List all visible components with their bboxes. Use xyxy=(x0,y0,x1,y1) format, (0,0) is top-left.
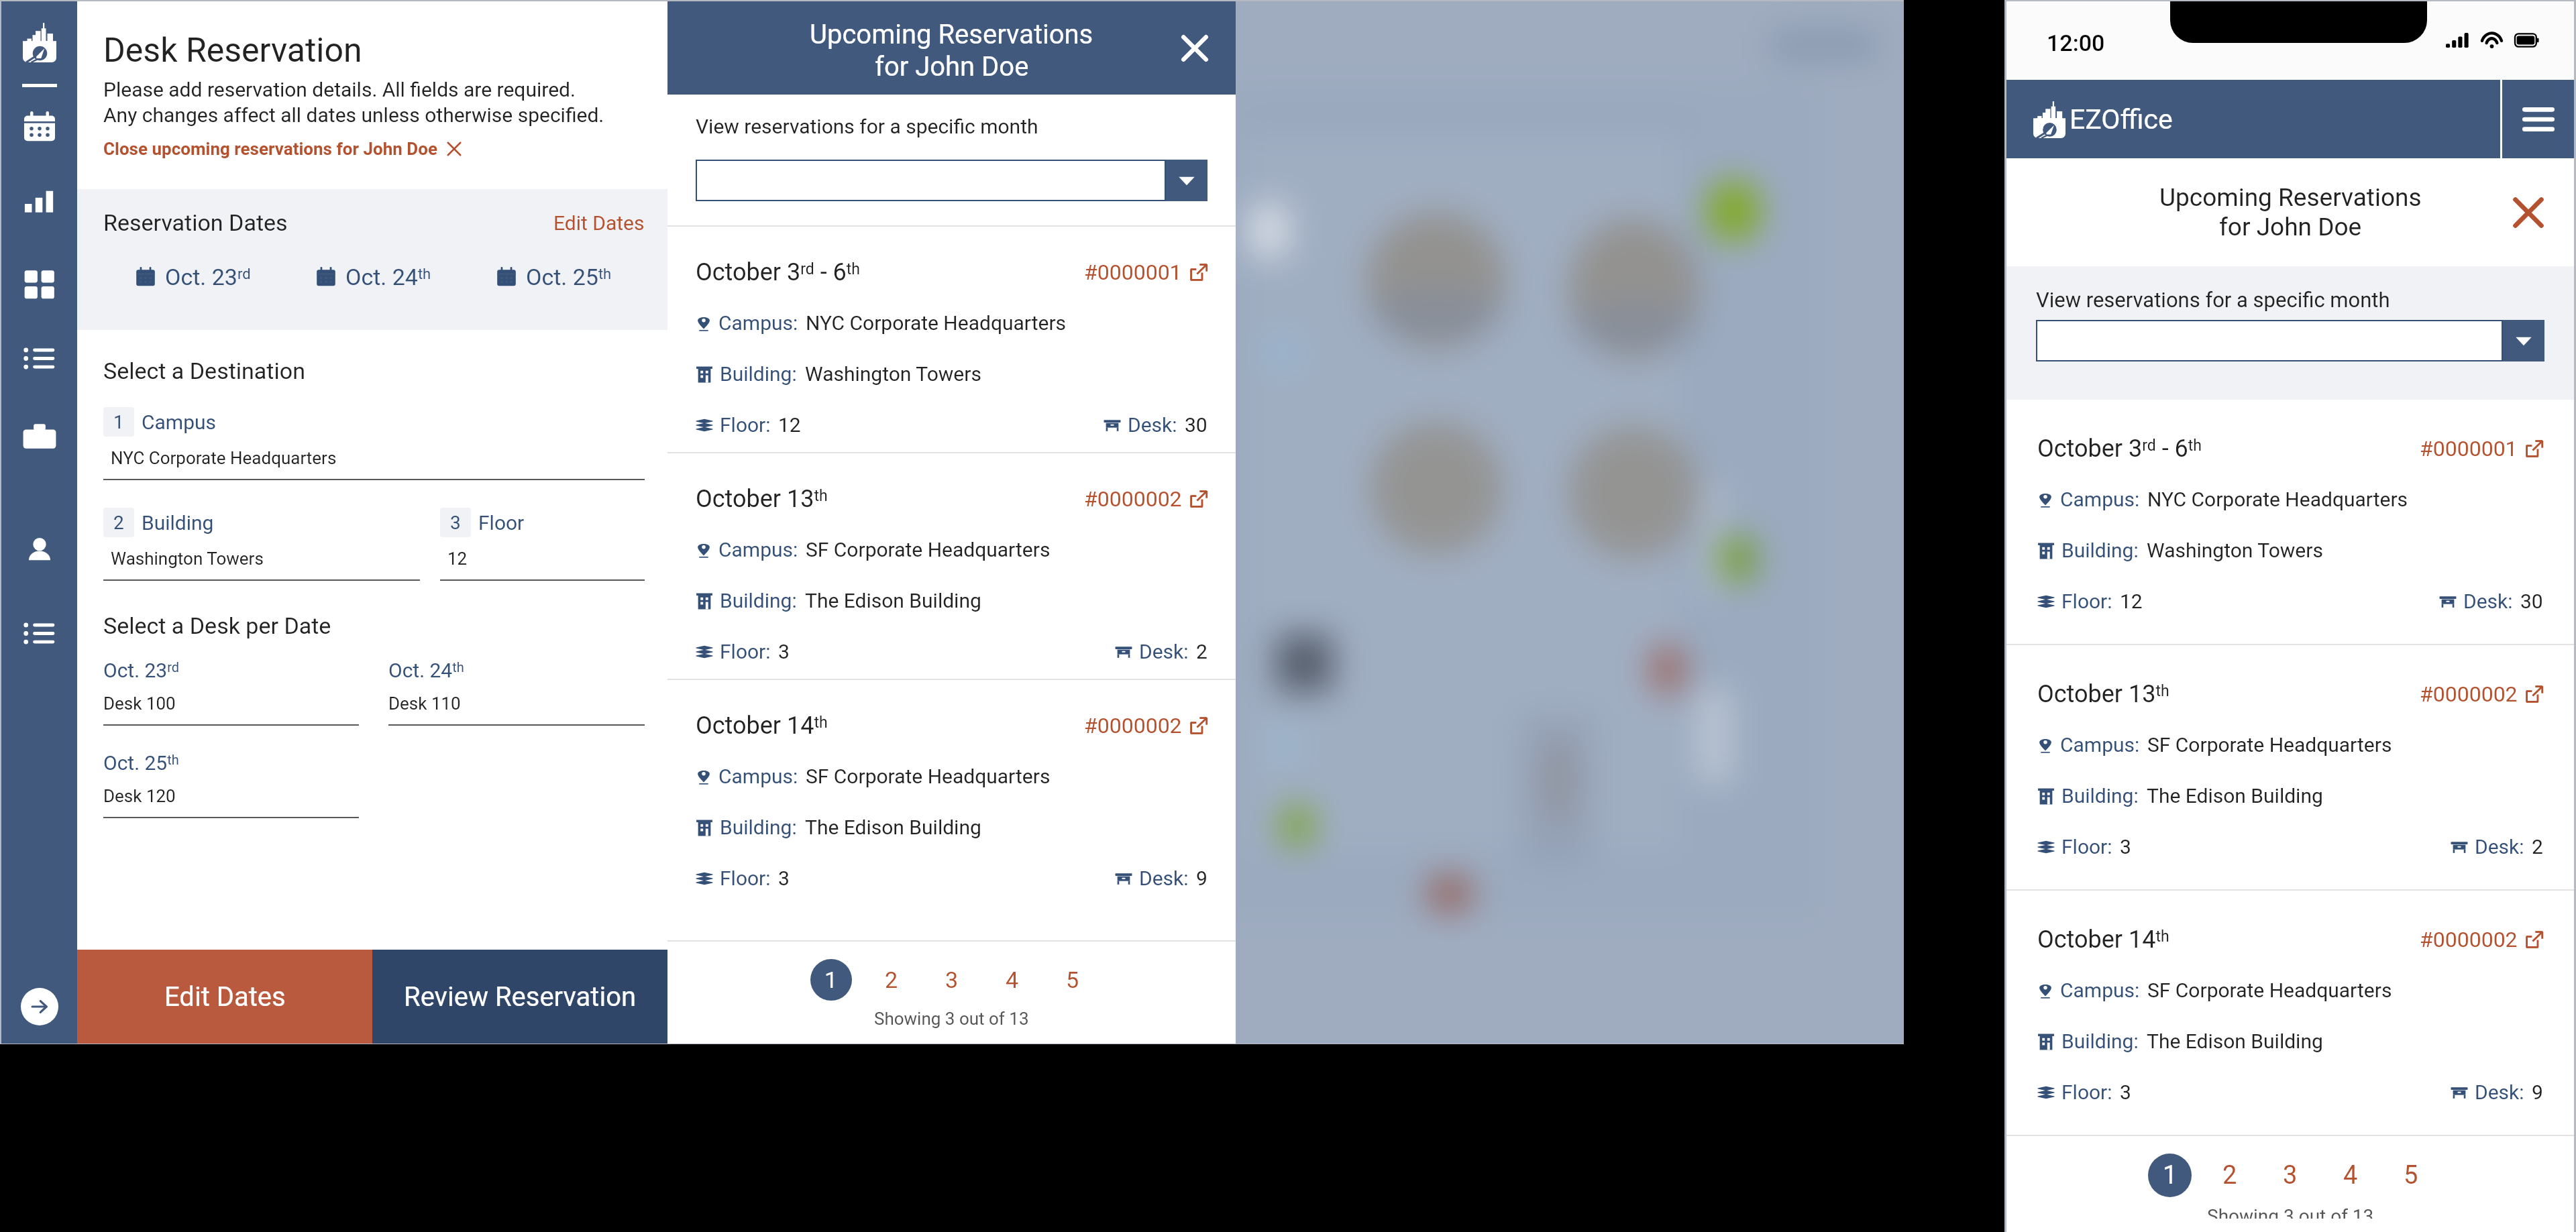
button[interactable]: Select month xyxy=(2036,320,2544,361)
staticText: Campus: xyxy=(718,311,803,335)
staticText: 4 xyxy=(1006,966,1019,993)
button[interactable]: 1 xyxy=(103,407,645,480)
button[interactable]: October 14th xyxy=(2006,891,2574,1135)
button[interactable]: Open reservation #0000002 xyxy=(1084,486,1207,512)
button[interactable]: October 14th xyxy=(667,680,1236,905)
staticText: 12:00 xyxy=(2047,30,2105,56)
button[interactable]: Dashboard xyxy=(17,262,62,307)
staticText: October 3rd - 6th xyxy=(2037,435,2202,463)
staticText: Campus: xyxy=(718,538,803,561)
button[interactable]: October 3rd - 6th xyxy=(667,227,1236,452)
button[interactable]: Open reservation #0000001 xyxy=(2420,436,2543,461)
staticText: Desk: xyxy=(1139,866,1193,890)
staticText: Building: xyxy=(720,362,802,386)
button[interactable]: Select month xyxy=(696,160,1207,201)
staticText: #0000001 xyxy=(1084,260,1182,285)
staticText: View reservations for a specific month xyxy=(2036,288,2390,312)
staticText: Oct. 25th xyxy=(526,264,612,290)
button[interactable]: Oct. 24th xyxy=(284,264,464,290)
staticText: Close upcoming reservations for John Doe xyxy=(103,139,437,159)
staticText: Upcoming Reservations xyxy=(2159,183,2422,212)
staticText: #0000001 xyxy=(2420,436,2518,461)
staticText: Floor: xyxy=(2061,1080,2117,1104)
staticText: Desk 100 xyxy=(103,693,176,714)
button[interactable]: Calendar xyxy=(17,104,62,150)
button[interactable]: 1 xyxy=(810,959,852,1001)
button[interactable]: Lists xyxy=(17,335,62,381)
staticText: Oct. 23rd xyxy=(103,659,180,682)
staticText: Building: xyxy=(720,816,802,839)
button[interactable]: Edit Dates xyxy=(77,950,372,1044)
button[interactable]: 3 xyxy=(440,508,645,581)
button[interactable]: 2 xyxy=(103,508,420,581)
staticText: Floor: xyxy=(720,413,775,437)
button[interactable]: Oct. 24th xyxy=(388,659,645,726)
staticText: Desk: xyxy=(1128,413,1182,437)
button[interactable]: Oct. 25th xyxy=(103,751,359,818)
button[interactable]: 5 xyxy=(1042,959,1103,1001)
staticText: Desk: xyxy=(2463,590,2518,613)
button[interactable]: 4 xyxy=(2320,1154,2381,1197)
button[interactable]: Menu xyxy=(2502,80,2574,158)
staticText: Showing 3 out of 13 xyxy=(874,1009,1029,1029)
staticText: Campus: xyxy=(718,765,803,788)
button[interactable]: 1 xyxy=(2148,1154,2192,1197)
staticText: Desk: xyxy=(2475,835,2529,858)
button[interactable]: October 13th xyxy=(2006,645,2574,889)
button[interactable]: Close upcoming reservations for John Doe xyxy=(103,139,462,159)
button[interactable]: Open reservation #0000002 xyxy=(2420,927,2543,952)
button[interactable]: October 3rd - 6th xyxy=(2006,400,2574,644)
staticText: Oct. 23rd xyxy=(165,264,251,290)
button[interactable]: 5 xyxy=(2381,1154,2441,1197)
staticText: Campus: xyxy=(2060,978,2145,1002)
button[interactable]: Close xyxy=(2503,187,2554,238)
button[interactable]: Oct. 23rd xyxy=(103,659,359,726)
staticText: Floor: xyxy=(720,640,775,663)
staticText: The Edison Building xyxy=(805,816,981,839)
staticText: 3 xyxy=(2120,835,2131,858)
button[interactable]: Open reservation #0000001 xyxy=(1084,260,1207,285)
staticText: Washington Towers xyxy=(111,549,264,569)
button[interactable]: Profile xyxy=(17,527,62,573)
button[interactable]: EZOffice xyxy=(2033,80,2500,158)
staticText: 1 xyxy=(113,411,124,433)
button[interactable]: October 13th xyxy=(667,453,1236,679)
staticText: Oct. 24th xyxy=(388,659,464,682)
staticText: October 13th xyxy=(696,485,828,513)
button[interactable]: 3 xyxy=(2260,1154,2320,1197)
staticText: Campus: xyxy=(2060,488,2145,511)
button[interactable]: Open reservation #0000002 xyxy=(1084,713,1207,738)
staticText: Reservation Dates xyxy=(103,209,288,236)
staticText: SF Corporate Headquarters xyxy=(2147,733,2392,757)
staticText: Floor xyxy=(478,511,525,535)
button[interactable]: 3 xyxy=(922,959,982,1001)
staticText: Building: xyxy=(720,589,802,612)
button[interactable]: 2 xyxy=(861,959,922,1001)
staticText: Upcoming Reservations xyxy=(810,19,1093,50)
staticText: October 14th xyxy=(696,712,828,740)
button[interactable]: Oct. 23rd xyxy=(103,264,284,290)
button[interactable]: Assets xyxy=(17,414,62,459)
staticText: #0000002 xyxy=(2420,681,2518,707)
staticText: 2 xyxy=(2532,835,2543,858)
staticText: Desk 120 xyxy=(103,786,176,806)
button[interactable]: Open reservation #0000002 xyxy=(2420,681,2543,707)
button[interactable]: 4 xyxy=(982,959,1042,1001)
staticText: Campus: xyxy=(2060,733,2145,757)
button[interactable]: Expand menu xyxy=(21,988,58,1025)
button[interactable]: More xyxy=(17,610,62,656)
staticText: Floor: xyxy=(720,866,775,890)
staticText: Washington Towers xyxy=(2147,539,2323,562)
staticText: 2 xyxy=(885,966,898,993)
staticText: 3 xyxy=(2283,1160,2298,1190)
button[interactable]: Review Reservation xyxy=(372,950,667,1044)
button[interactable]: Edit Dates xyxy=(553,211,645,235)
staticText: Desk: xyxy=(1139,640,1193,663)
button[interactable]: Oct. 25th xyxy=(464,264,645,290)
button[interactable]: 2 xyxy=(2200,1154,2260,1197)
button[interactable]: Reports xyxy=(17,178,62,223)
button[interactable]: Close xyxy=(1171,24,1219,72)
button[interactable]: Home xyxy=(17,19,62,65)
staticText: Select a Desk per Date xyxy=(103,612,331,639)
staticText: 3 xyxy=(778,640,790,663)
